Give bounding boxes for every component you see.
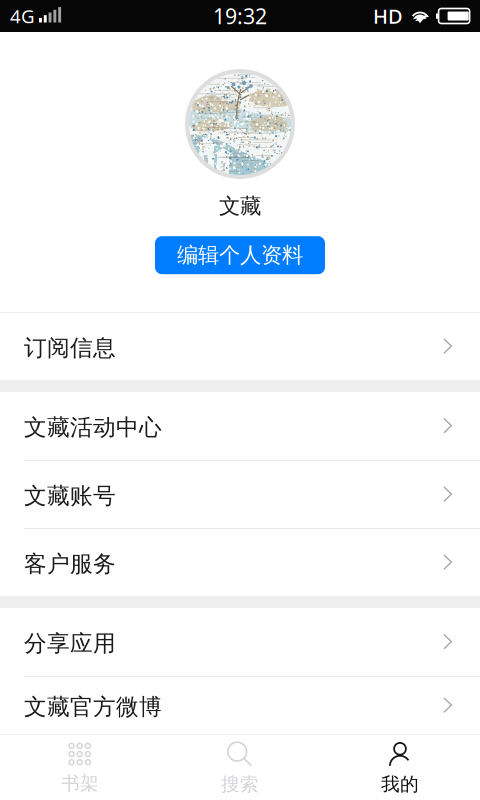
staticText: 文藏 xyxy=(219,193,261,219)
staticText: 文藏账号 xyxy=(24,482,116,510)
button[interactable]: 我的 xyxy=(320,735,480,800)
button[interactable]: 文藏官方微博 xyxy=(0,677,480,734)
button[interactable]: 分享应用 xyxy=(0,608,480,676)
staticText: 文藏官方微博 xyxy=(24,693,162,721)
button[interactable]: 编辑个人资料 xyxy=(155,236,325,274)
staticText: 我的 xyxy=(381,773,419,796)
button[interactable]: 订阅信息 xyxy=(0,313,480,380)
staticText: 4G xyxy=(10,4,35,28)
staticText: 订阅信息 xyxy=(24,334,116,362)
staticText: HD xyxy=(373,3,403,29)
staticText: 编辑个人资料 xyxy=(177,242,303,268)
staticText: 搜索 xyxy=(221,773,259,796)
staticText: 书架 xyxy=(61,772,99,795)
button[interactable]: 文藏活动中心 xyxy=(0,392,480,460)
staticText: 文藏活动中心 xyxy=(24,414,162,441)
staticText: 客户服务 xyxy=(24,550,116,578)
staticText: 19:32 xyxy=(213,2,267,30)
button[interactable]: 文藏账号 xyxy=(0,461,480,528)
staticText: 分享应用 xyxy=(24,630,116,657)
button[interactable]: 客户服务 xyxy=(0,529,480,596)
button[interactable]: 搜索 xyxy=(160,735,320,800)
button[interactable]: 书架 xyxy=(0,735,160,800)
